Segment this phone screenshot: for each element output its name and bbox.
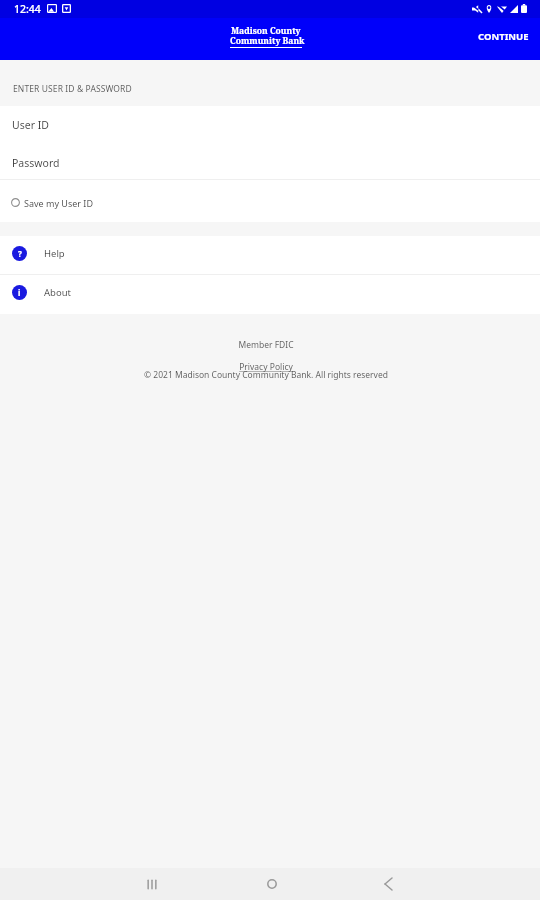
staticText: © 2021 Madison County Community Bank. Al…	[144, 369, 388, 381]
button[interactable]: User ID	[0, 106, 540, 142]
staticText: Help	[44, 247, 65, 260]
staticText: 12:44	[14, 2, 41, 16]
button[interactable]: Privacy Policy	[239, 361, 293, 373]
button[interactable]: Password	[0, 144, 540, 181]
staticText: Password	[12, 156, 60, 170]
staticText: Madison County	[231, 25, 301, 37]
staticText: About	[44, 286, 71, 299]
staticText: Save my User ID	[24, 197, 93, 209]
staticText: ENTER USER ID & PASSWORD	[13, 83, 132, 95]
button[interactable]: ?	[0, 234, 540, 272]
staticText: User ID	[12, 118, 49, 132]
staticText: Member FDIC	[238, 339, 294, 351]
staticText: ?	[18, 248, 22, 259]
staticText: Community Bank	[230, 35, 305, 47]
button[interactable]: CONTINUE	[468, 25, 538, 47]
staticText: CONTINUE	[478, 30, 529, 43]
button[interactable]: Recents	[128, 868, 176, 900]
button[interactable]: Save my User ID	[0, 182, 540, 224]
button[interactable]: i	[0, 273, 540, 311]
button[interactable]: Home	[248, 868, 296, 900]
button[interactable]: Back	[364, 868, 412, 900]
staticText: i	[18, 287, 21, 298]
